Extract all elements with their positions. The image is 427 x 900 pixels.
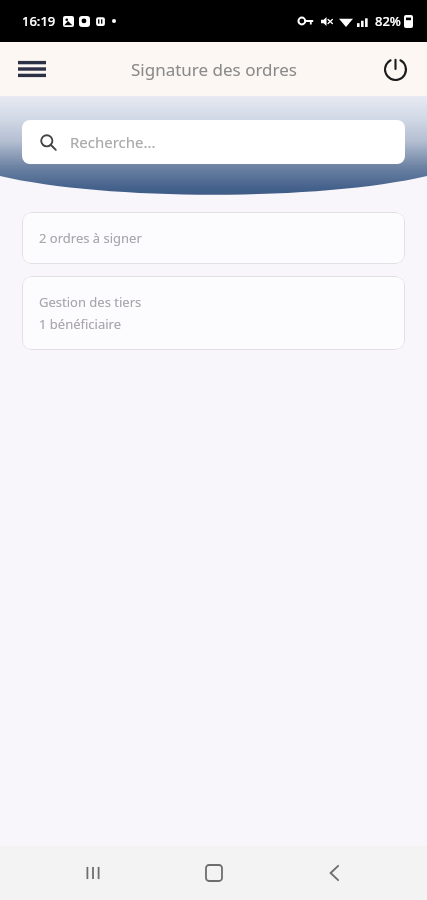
staticText: 1 bénéficiaire (39, 315, 122, 333)
button[interactable]: Déconnexion (371, 45, 419, 93)
button[interactable]: Back (306, 846, 362, 900)
button[interactable]: Recents (65, 846, 121, 900)
button[interactable]: 2 ordres à signer (22, 212, 405, 264)
staticText: Signature des ordres (131, 58, 297, 81)
staticText: 16:19 (22, 12, 56, 30)
button[interactable]: Recherche... (22, 120, 405, 164)
button[interactable]: Menu (8, 45, 56, 93)
button[interactable]: Gestion des tiers (22, 276, 405, 350)
staticText: 82% (375, 12, 401, 30)
staticText: Recherche... (70, 132, 156, 152)
staticText: Gestion des tiers (39, 293, 142, 311)
staticText: 2 ordres à signer (39, 229, 142, 247)
button[interactable]: Home (186, 846, 242, 900)
